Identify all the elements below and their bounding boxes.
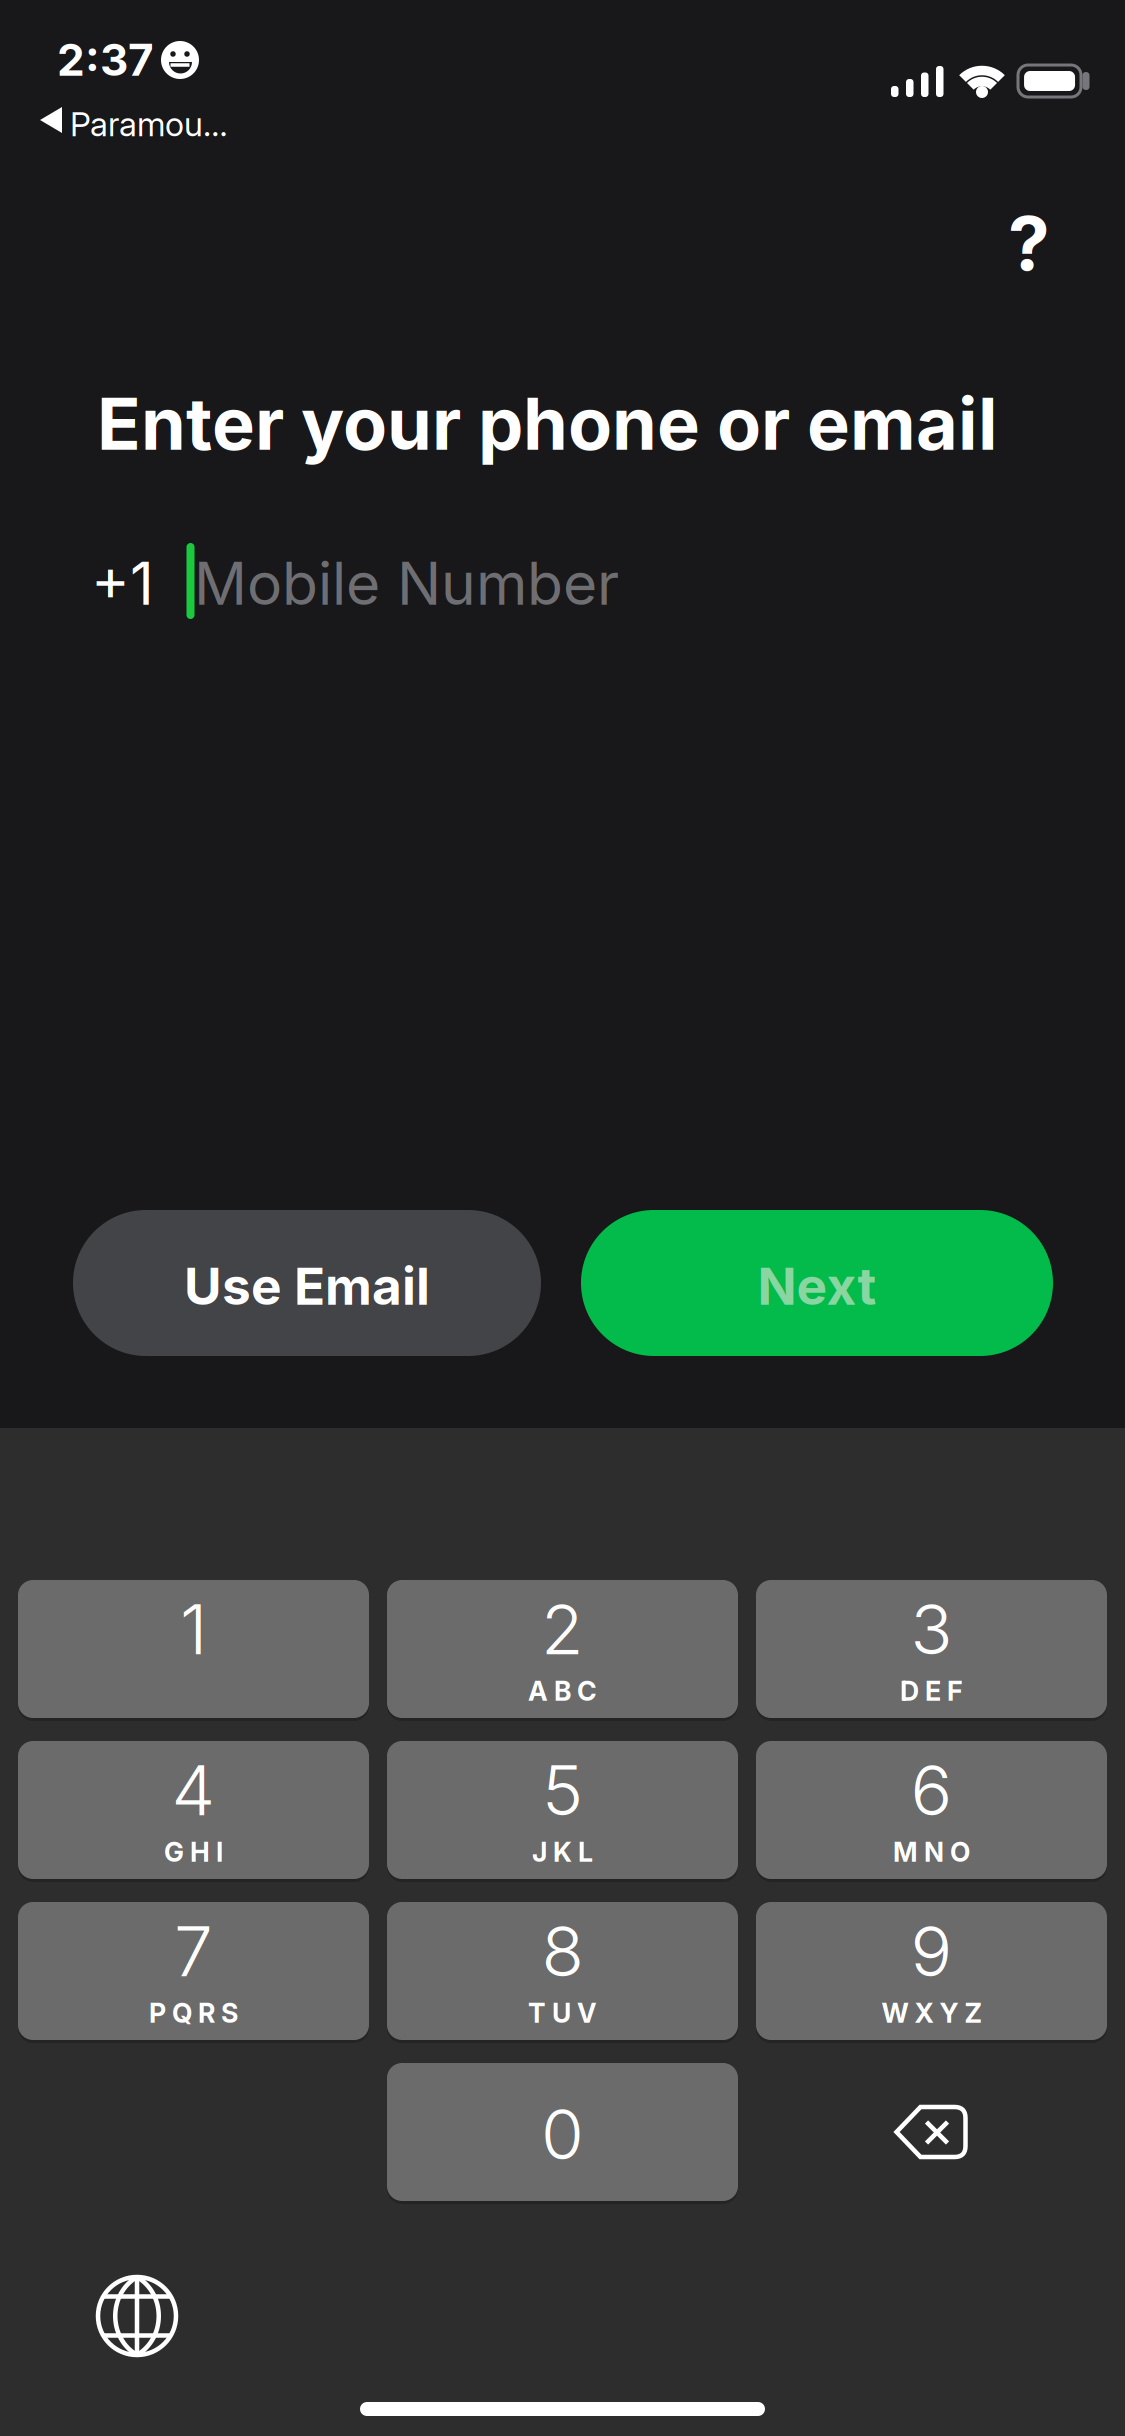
staticText: 0	[541, 2092, 584, 2176]
button[interactable]: 8	[387, 1900, 738, 2042]
staticText: 9	[910, 1909, 952, 1993]
button[interactable]: Use Email	[73, 1210, 541, 1356]
button[interactable]: 2	[387, 1578, 738, 1720]
staticText: 2	[541, 1587, 584, 1671]
button[interactable]: Next	[581, 1210, 1053, 1356]
button[interactable]: 0	[387, 2061, 738, 2203]
staticText: 4	[171, 1748, 215, 1832]
button[interactable]: 4	[18, 1739, 369, 1881]
staticText: 6	[910, 1748, 952, 1832]
staticText: ?	[1008, 198, 1050, 288]
staticText: Enter your phone or email	[97, 380, 998, 467]
button[interactable]: 3	[756, 1578, 1107, 1720]
staticText: PQRS	[149, 1997, 238, 2029]
staticText: 2:37	[57, 33, 154, 86]
staticText: TUV	[528, 1997, 597, 2029]
staticText: 5	[542, 1748, 583, 1832]
staticText: WXYZ	[881, 1997, 981, 2029]
staticText: Next	[757, 1255, 876, 1317]
button[interactable]: Next keyboard	[95, 2274, 179, 2358]
staticText: JKL	[532, 1836, 593, 1868]
button[interactable]: 1	[18, 1578, 369, 1720]
staticText: 7	[174, 1909, 213, 1993]
button[interactable]: 7	[18, 1900, 369, 2042]
button[interactable]: 6	[756, 1739, 1107, 1881]
staticText: 1	[180, 1587, 207, 1671]
button[interactable]: Delete	[756, 2061, 1107, 2203]
staticText: 3	[910, 1587, 952, 1671]
staticText: MNO	[893, 1836, 970, 1868]
staticText: DEF	[900, 1675, 963, 1707]
staticText: Paramou…	[70, 104, 228, 144]
button[interactable]: 9	[756, 1900, 1107, 2042]
button[interactable]: 5	[387, 1739, 738, 1881]
staticText: Mobile Number	[194, 548, 619, 619]
staticText: Use Email	[184, 1255, 430, 1317]
staticText: ABC	[528, 1675, 597, 1707]
staticText: +1	[91, 548, 154, 619]
staticText: GHI	[164, 1836, 223, 1868]
staticText: 8	[541, 1909, 583, 1993]
button[interactable]: Help	[1008, 198, 1050, 288]
button[interactable]: Back to Paramount	[40, 104, 240, 150]
